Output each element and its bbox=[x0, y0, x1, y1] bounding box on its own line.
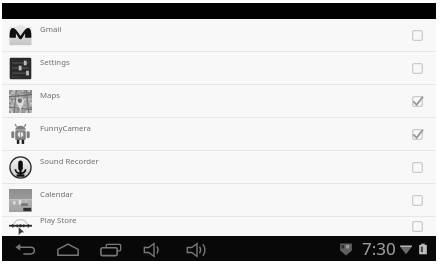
button[interactable]: FunnyCamera bbox=[2, 118, 436, 150]
button[interactable]: Home bbox=[56, 238, 80, 261]
button[interactable]: Battery bbox=[416, 242, 429, 255]
staticText: Calendar bbox=[40, 189, 73, 200]
button[interactable]: Volume up bbox=[185, 238, 209, 261]
button[interactable]: Select app bbox=[410, 94, 425, 109]
button[interactable]: Sound Recorder bbox=[2, 151, 436, 183]
button[interactable]: Gmail bbox=[2, 19, 436, 51]
button[interactable]: Volume down bbox=[142, 238, 166, 261]
button[interactable]: Maps bbox=[2, 85, 436, 117]
button[interactable]: Select app bbox=[410, 219, 425, 234]
staticText: Settings bbox=[40, 57, 70, 68]
button[interactable]: Select app bbox=[410, 61, 425, 76]
button[interactable]: Select app bbox=[410, 193, 425, 208]
staticText: Play Store bbox=[40, 215, 77, 226]
button[interactable]: Select app bbox=[410, 28, 425, 43]
button[interactable]: Wi-Fi bbox=[398, 241, 413, 256]
button[interactable]: Calendar bbox=[2, 184, 436, 216]
button[interactable]: Recent apps bbox=[99, 238, 123, 261]
button[interactable]: USB debugging bbox=[338, 241, 354, 257]
button[interactable]: Select app bbox=[410, 160, 425, 175]
staticText: FunnyCamera bbox=[40, 123, 91, 134]
button[interactable]: Play Store bbox=[2, 217, 436, 236]
button[interactable]: Settings bbox=[2, 52, 436, 84]
button[interactable]: Select app bbox=[410, 127, 425, 142]
staticText: Maps bbox=[40, 90, 60, 101]
button[interactable]: Back bbox=[14, 238, 38, 261]
staticText: 7:30 bbox=[362, 237, 396, 260]
staticText: Gmail bbox=[40, 24, 62, 35]
staticText: Sound Recorder bbox=[40, 156, 99, 167]
